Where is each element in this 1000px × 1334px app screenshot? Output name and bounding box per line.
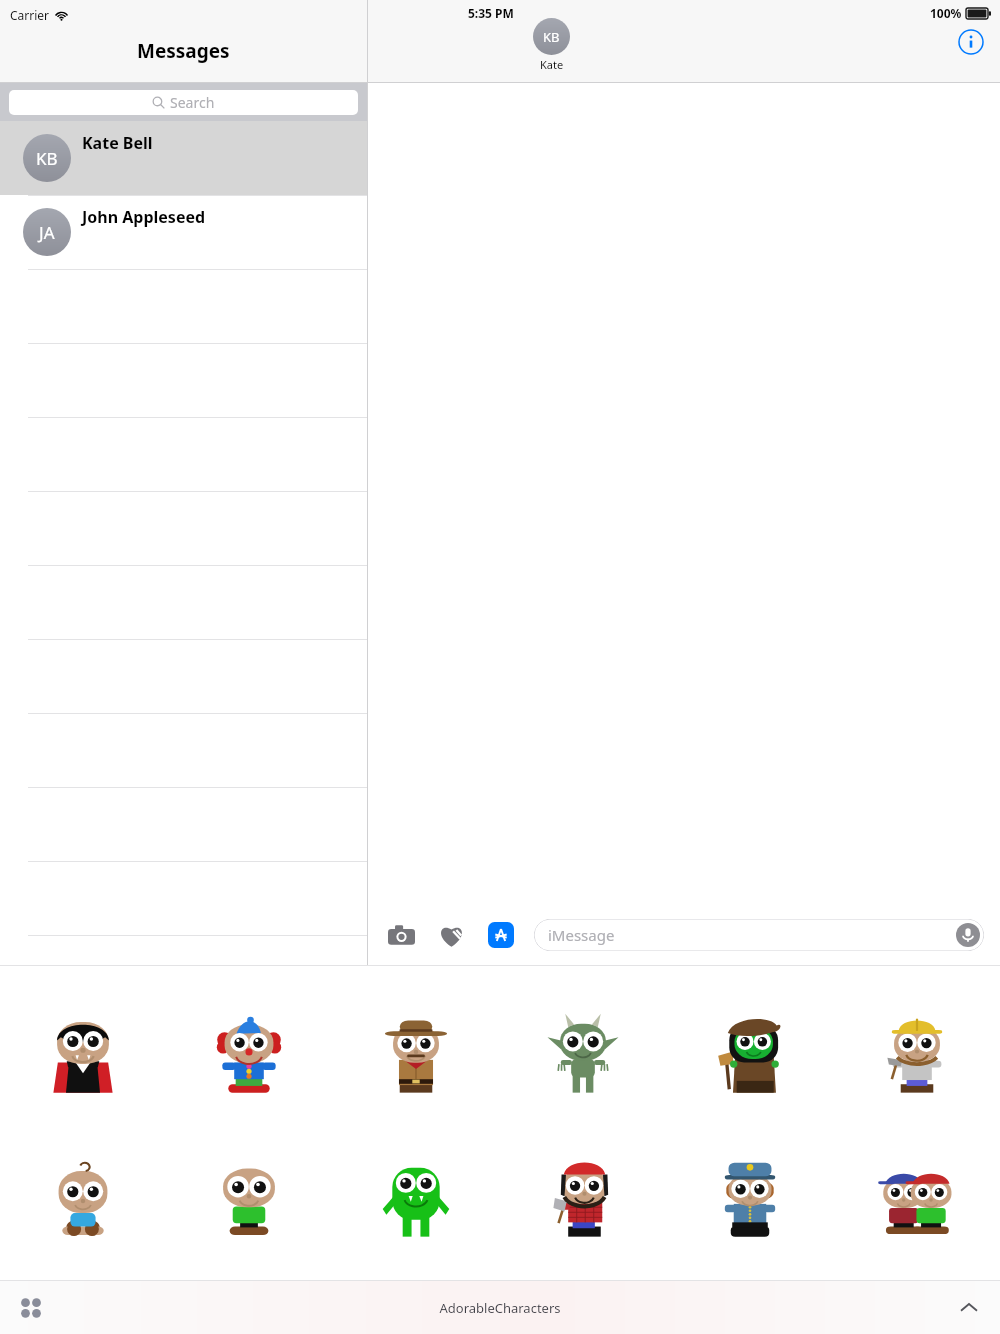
button[interactable]: Sticker	[833, 1126, 1000, 1270]
button[interactable]: Sticker	[332, 1126, 499, 1270]
button[interactable]: iMessage	[534, 919, 984, 951]
staticText: Messages	[137, 38, 230, 64]
button[interactable]: Sticker	[332, 982, 499, 1126]
button[interactable]: Digital Touch	[434, 918, 468, 952]
button[interactable]: Sticker	[499, 982, 666, 1126]
staticText: iMessage	[548, 925, 615, 945]
button[interactable]: Camera	[384, 918, 418, 952]
button[interactable]: Sticker	[0, 1126, 166, 1270]
button[interactable]: KB	[0, 121, 367, 195]
staticText: Carrier	[10, 7, 50, 23]
button[interactable]: Sticker	[0, 982, 166, 1126]
button[interactable]: Sticker	[666, 1126, 833, 1270]
button[interactable]: Search	[9, 90, 358, 115]
button[interactable]: Details	[958, 29, 984, 55]
button[interactable]: KB	[533, 18, 570, 72]
button[interactable]: App Store	[484, 918, 518, 952]
staticText: KB	[36, 147, 58, 170]
staticText: Search	[170, 93, 215, 112]
button[interactable]: Dictate	[956, 923, 980, 947]
staticText: Kate Bell	[82, 132, 153, 154]
button[interactable]: Sticker	[666, 982, 833, 1126]
staticText: JA	[39, 221, 55, 244]
button[interactable]: JA	[0, 195, 367, 269]
button[interactable]: App drawer	[14, 1291, 48, 1325]
staticText: AdorableCharacters	[439, 1299, 561, 1317]
staticText: 5:35 PM	[468, 5, 514, 21]
button[interactable]: Sticker	[166, 1126, 332, 1270]
staticText: 100%	[930, 5, 962, 21]
button[interactable]: Expand	[952, 1291, 986, 1325]
staticText: KB	[543, 28, 560, 46]
button[interactable]: Sticker	[499, 1126, 666, 1270]
staticText: Kate	[540, 57, 564, 72]
staticText: John Appleseed	[82, 206, 206, 228]
button[interactable]: Sticker	[833, 982, 1000, 1126]
button[interactable]: Sticker	[166, 982, 332, 1126]
